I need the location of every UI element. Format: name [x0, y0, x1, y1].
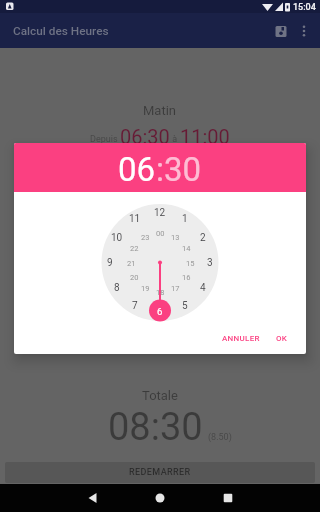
button[interactable]: OK	[266, 328, 298, 348]
staticText: 20	[130, 273, 139, 282]
button[interactable]: ANNULER	[216, 328, 266, 348]
staticText: OK	[276, 334, 288, 343]
staticText: Depuis	[90, 134, 120, 145]
staticText: REDEMARRER	[129, 467, 191, 478]
staticText: 18	[156, 288, 165, 297]
staticText: (8.50)	[208, 432, 232, 443]
staticText: 8	[114, 282, 120, 294]
button[interactable]	[81, 486, 105, 510]
staticText: 17	[171, 284, 180, 293]
staticText: Calcul des Heures	[13, 24, 109, 38]
staticText: 7	[132, 300, 138, 312]
staticText: 14	[182, 244, 191, 253]
staticText: 4	[200, 282, 206, 294]
staticText: 22	[130, 244, 139, 253]
staticText: Totale	[142, 388, 178, 403]
staticText: 11:00	[180, 125, 230, 148]
staticText: 08:30	[108, 405, 203, 450]
staticText: 3	[207, 257, 213, 269]
staticText: 15	[186, 259, 195, 268]
staticText: 13	[171, 233, 180, 242]
button[interactable]	[216, 486, 240, 510]
button[interactable]	[293, 20, 315, 42]
staticText: 21	[127, 259, 136, 268]
staticText: 00	[156, 229, 165, 238]
staticText: 5	[182, 300, 188, 312]
button[interactable]	[270, 20, 292, 42]
staticText: ANNULER	[222, 334, 260, 343]
button[interactable]	[148, 486, 172, 510]
staticText: 19	[141, 284, 150, 293]
staticText: 15:04	[293, 2, 316, 13]
staticText: 11	[129, 213, 141, 225]
staticText: 9	[107, 257, 113, 269]
staticText: 10	[111, 232, 123, 244]
button[interactable]: REDEMARRER	[5, 462, 315, 483]
staticText: :30	[156, 150, 202, 189]
staticText: 06:30	[120, 125, 170, 148]
staticText: 06	[118, 150, 156, 189]
staticText: 6	[157, 306, 163, 317]
staticText: 1	[182, 213, 188, 225]
staticText: 2	[200, 232, 206, 244]
staticText: 12	[154, 207, 166, 219]
staticText: Matin	[143, 103, 177, 118]
staticText: à	[170, 134, 180, 145]
staticText: 23	[141, 233, 150, 242]
staticText: 16	[182, 273, 191, 282]
